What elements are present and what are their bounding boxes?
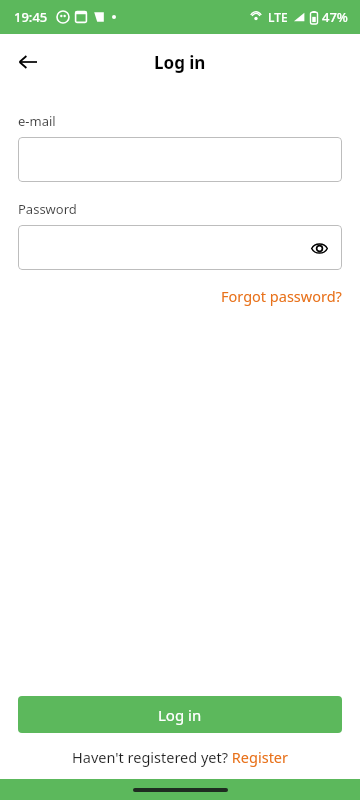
staticText: Haven't registered yet? Register (72, 747, 289, 767)
button[interactable]: Back (6, 40, 50, 84)
staticText: 19:45 (14, 8, 48, 26)
button[interactable] (18, 137, 342, 182)
staticText: LTE (268, 9, 288, 25)
button[interactable]: Show password (306, 235, 332, 261)
staticText: Log in (154, 51, 206, 74)
button[interactable]: Log in (18, 696, 342, 733)
button[interactable]: Haven't registered yet? Register (72, 747, 289, 767)
button[interactable]: Forgot password? (221, 282, 342, 310)
staticText: 47% (322, 8, 348, 26)
staticText: Forgot password? (221, 286, 342, 306)
staticText: e-mail (18, 112, 56, 130)
staticText: Password (18, 200, 77, 218)
staticText: Log in (158, 705, 202, 725)
button[interactable]: Show password (18, 225, 342, 270)
